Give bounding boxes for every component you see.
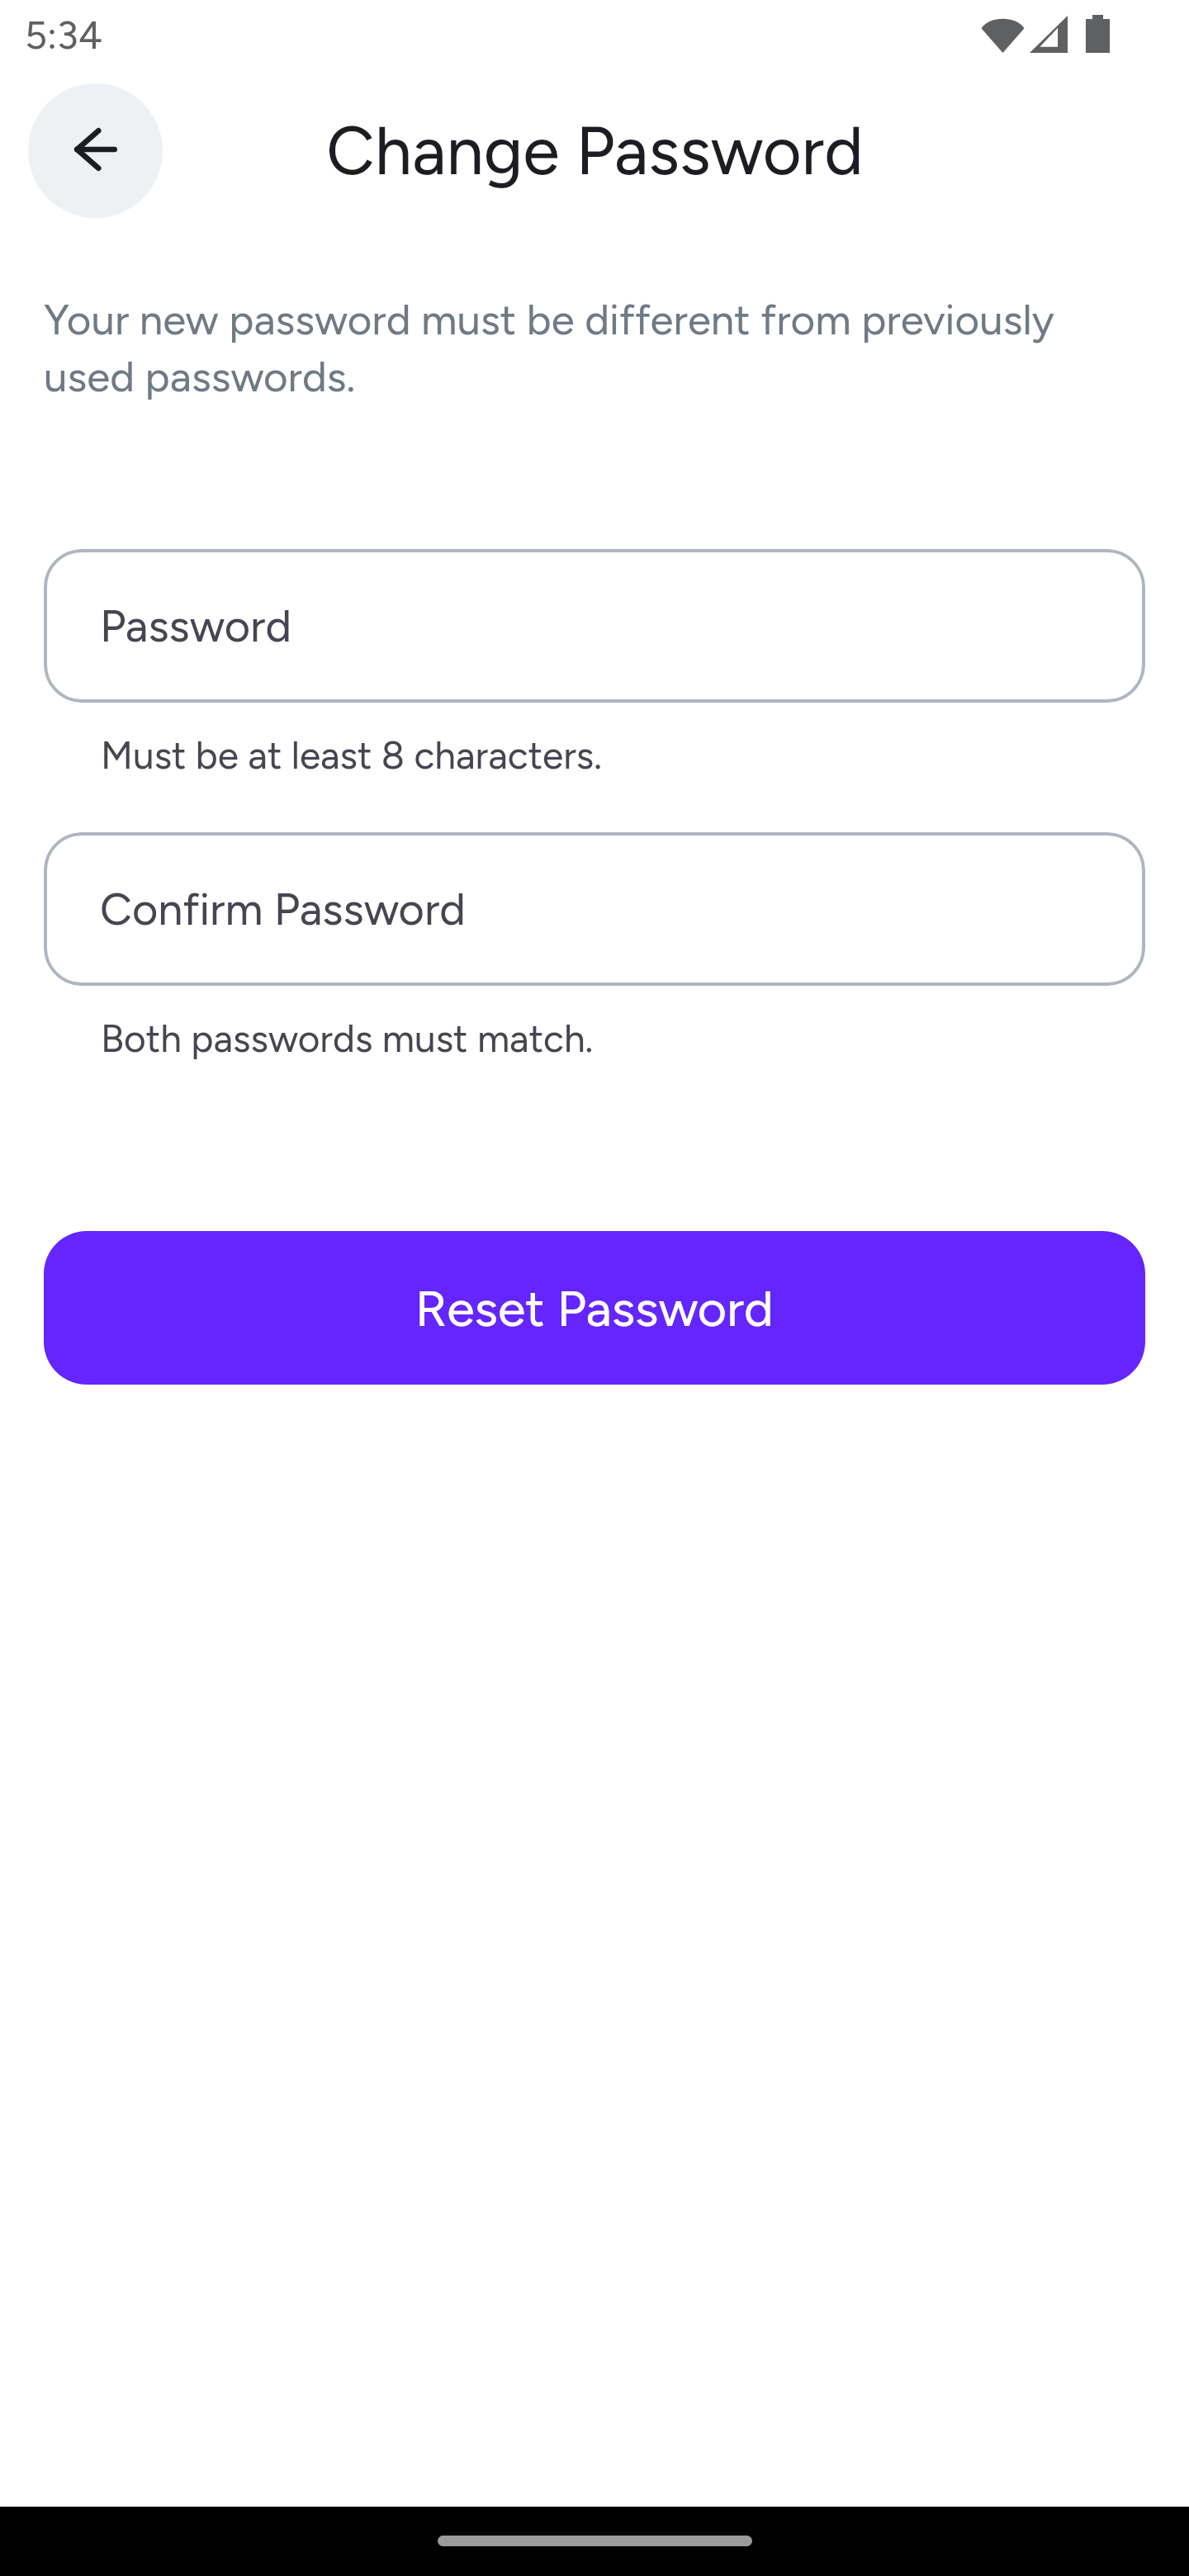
button[interactable]: Reset Password — [44, 1231, 1145, 1385]
staticText: Your new password must be different from… — [44, 295, 1106, 402]
button[interactable]: Back — [28, 83, 163, 218]
staticText: Reset Password — [415, 1278, 774, 1338]
staticText: Confirm Password — [100, 883, 466, 936]
staticText: Both passwords must match. — [101, 1016, 594, 1061]
staticText: Must be at least 8 characters. — [101, 732, 603, 778]
staticText: 5:34 — [25, 12, 102, 58]
staticText: Password — [100, 599, 292, 653]
button[interactable]: Confirm Password — [44, 832, 1145, 986]
button[interactable]: Password — [44, 549, 1145, 703]
staticText: Change Password — [326, 111, 864, 191]
